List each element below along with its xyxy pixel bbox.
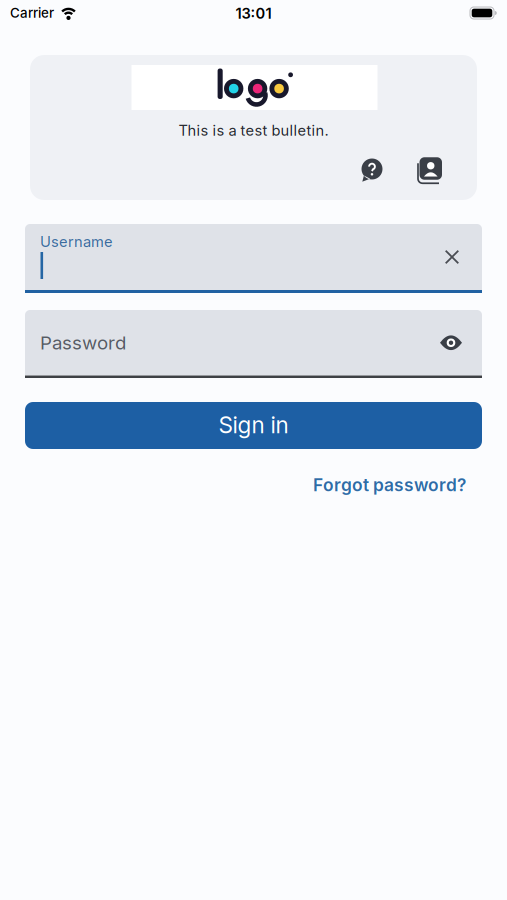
button[interactable]: Contact support — [411, 151, 449, 192]
staticText: Username — [40, 233, 113, 250]
staticText: Password — [40, 332, 126, 354]
button[interactable]: Help — [353, 150, 390, 187]
staticText: 13:01 — [235, 5, 271, 22]
staticText: Forgot password? — [313, 475, 466, 495]
button[interactable]: Sign in — [25, 402, 482, 449]
button[interactable]: Show password — [429, 324, 473, 361]
staticText: Sign in — [218, 412, 288, 438]
staticText: This is a test bulletin. — [178, 122, 328, 139]
button[interactable]: Username — [25, 224, 482, 293]
staticText: Carrier — [10, 5, 54, 21]
button[interactable]: Password — [25, 310, 482, 378]
button[interactable]: Clear username — [433, 238, 471, 276]
button[interactable]: Forgot password? — [313, 475, 466, 495]
